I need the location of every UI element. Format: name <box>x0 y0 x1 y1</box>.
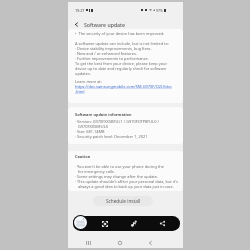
staticText: updates. <box>75 71 178 76</box>
staticText: 19:27 <box>75 8 85 13</box>
staticText: device up to date and regularly check fo… <box>75 66 178 71</box>
staticText: always a good idea to back up your data … <box>75 184 178 189</box>
staticText: · You won't be able to use your phone du… <box>75 164 178 169</box>
staticText: · This update shouldn't affect your pers… <box>75 179 178 184</box>
button[interactable]: Add to playlist <box>128 218 139 229</box>
button[interactable]: Album art <box>73 215 88 230</box>
staticText: .html <box>75 89 178 94</box>
staticText: · Some settings may change after the upd… <box>75 174 178 179</box>
staticText: · Device stability improvements, bug fix… <box>75 46 178 51</box>
staticText: · Size: 681.14MB <box>75 129 178 134</box>
staticText: To get the best from your device, please… <box>75 61 178 66</box>
button[interactable]: Home <box>114 237 126 249</box>
staticText: · Version: G970FXXSBFUL1 / G970FOTP8FUL0… <box>75 119 178 124</box>
button[interactable]: Schedule install <box>93 196 153 206</box>
staticText: for emergency calls. <box>75 169 178 174</box>
staticText: Caution <box>75 154 178 159</box>
staticText: G970FXXSBFUL0 <box>75 124 178 129</box>
staticText: Software update <box>84 21 126 28</box>
staticText: 97% <box>156 8 163 13</box>
staticText: A software update can include, but is no… <box>75 41 178 46</box>
staticText: · Security patch level: December 1, 2021 <box>75 134 178 139</box>
button[interactable]: Recent apps <box>82 237 94 249</box>
staticText: Learn more at: <box>75 79 178 84</box>
staticText: · New and / or enhanced features. <box>75 51 178 56</box>
staticText: · Further improvements to performance. <box>75 56 178 61</box>
staticText: Schedule install <box>106 198 141 204</box>
staticText: Software update information <box>75 112 178 117</box>
staticText: https://doc.samsungmobile.com/SM-G970F/O… <box>75 84 178 89</box>
staticText: • The security of your device has been i… <box>75 31 178 36</box>
button[interactable]: Navigate up <box>70 18 82 30</box>
button[interactable]: Back <box>144 237 156 249</box>
button[interactable]: Smart view <box>99 218 110 229</box>
button[interactable]: Share <box>157 218 168 229</box>
